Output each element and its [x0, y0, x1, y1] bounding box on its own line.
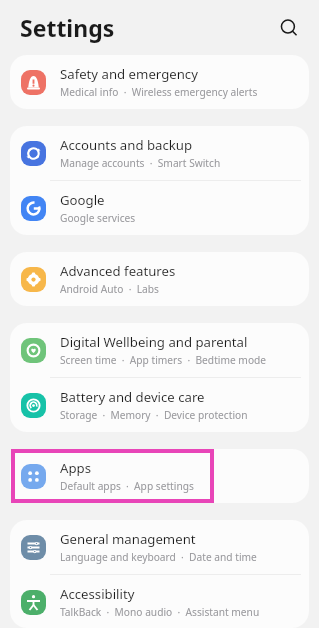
staticText: Google services [60, 211, 136, 225]
staticText: Settings [20, 12, 115, 43]
button[interactable]: Accessibility [10, 575, 309, 628]
staticText: Default apps · App settings [60, 479, 194, 493]
staticText: Battery and device care [60, 388, 205, 406]
button[interactable]: Safety and emergency [10, 55, 309, 109]
staticText: Google [60, 191, 105, 209]
staticText: General management [60, 530, 196, 548]
staticText: Digital Wellbeing and parental controls [60, 333, 299, 351]
button[interactable]: Search [273, 12, 305, 44]
staticText: Accounts and backup [60, 136, 193, 154]
staticText: Language and keyboard · Date and time [60, 550, 257, 564]
staticText: Android Auto · Labs [60, 282, 159, 296]
button[interactable]: Advanced features [10, 252, 309, 306]
staticText: TalkBack · Mono audio · Assistant menu [60, 605, 260, 619]
button[interactable]: Apps [10, 449, 309, 503]
staticText: Medical info · Wireless emergency alerts [60, 85, 258, 99]
button[interactable]: Battery and device care [10, 378, 309, 432]
button[interactable]: Accounts and backup [10, 126, 309, 180]
staticText: Storage · Memory · Device protection [60, 408, 248, 422]
button[interactable]: General management [10, 520, 309, 574]
staticText: Accessibility [60, 585, 135, 603]
button[interactable]: Google [10, 181, 309, 235]
staticText: Apps [60, 459, 91, 477]
button[interactable]: Digital Wellbeing and parental controls [10, 323, 309, 377]
staticText: Advanced features [60, 262, 176, 280]
staticText: Screen time · App timers · Bedtime mode [60, 353, 267, 367]
staticText: Manage accounts · Smart Switch [60, 156, 221, 170]
staticText: Safety and emergency [60, 65, 198, 83]
